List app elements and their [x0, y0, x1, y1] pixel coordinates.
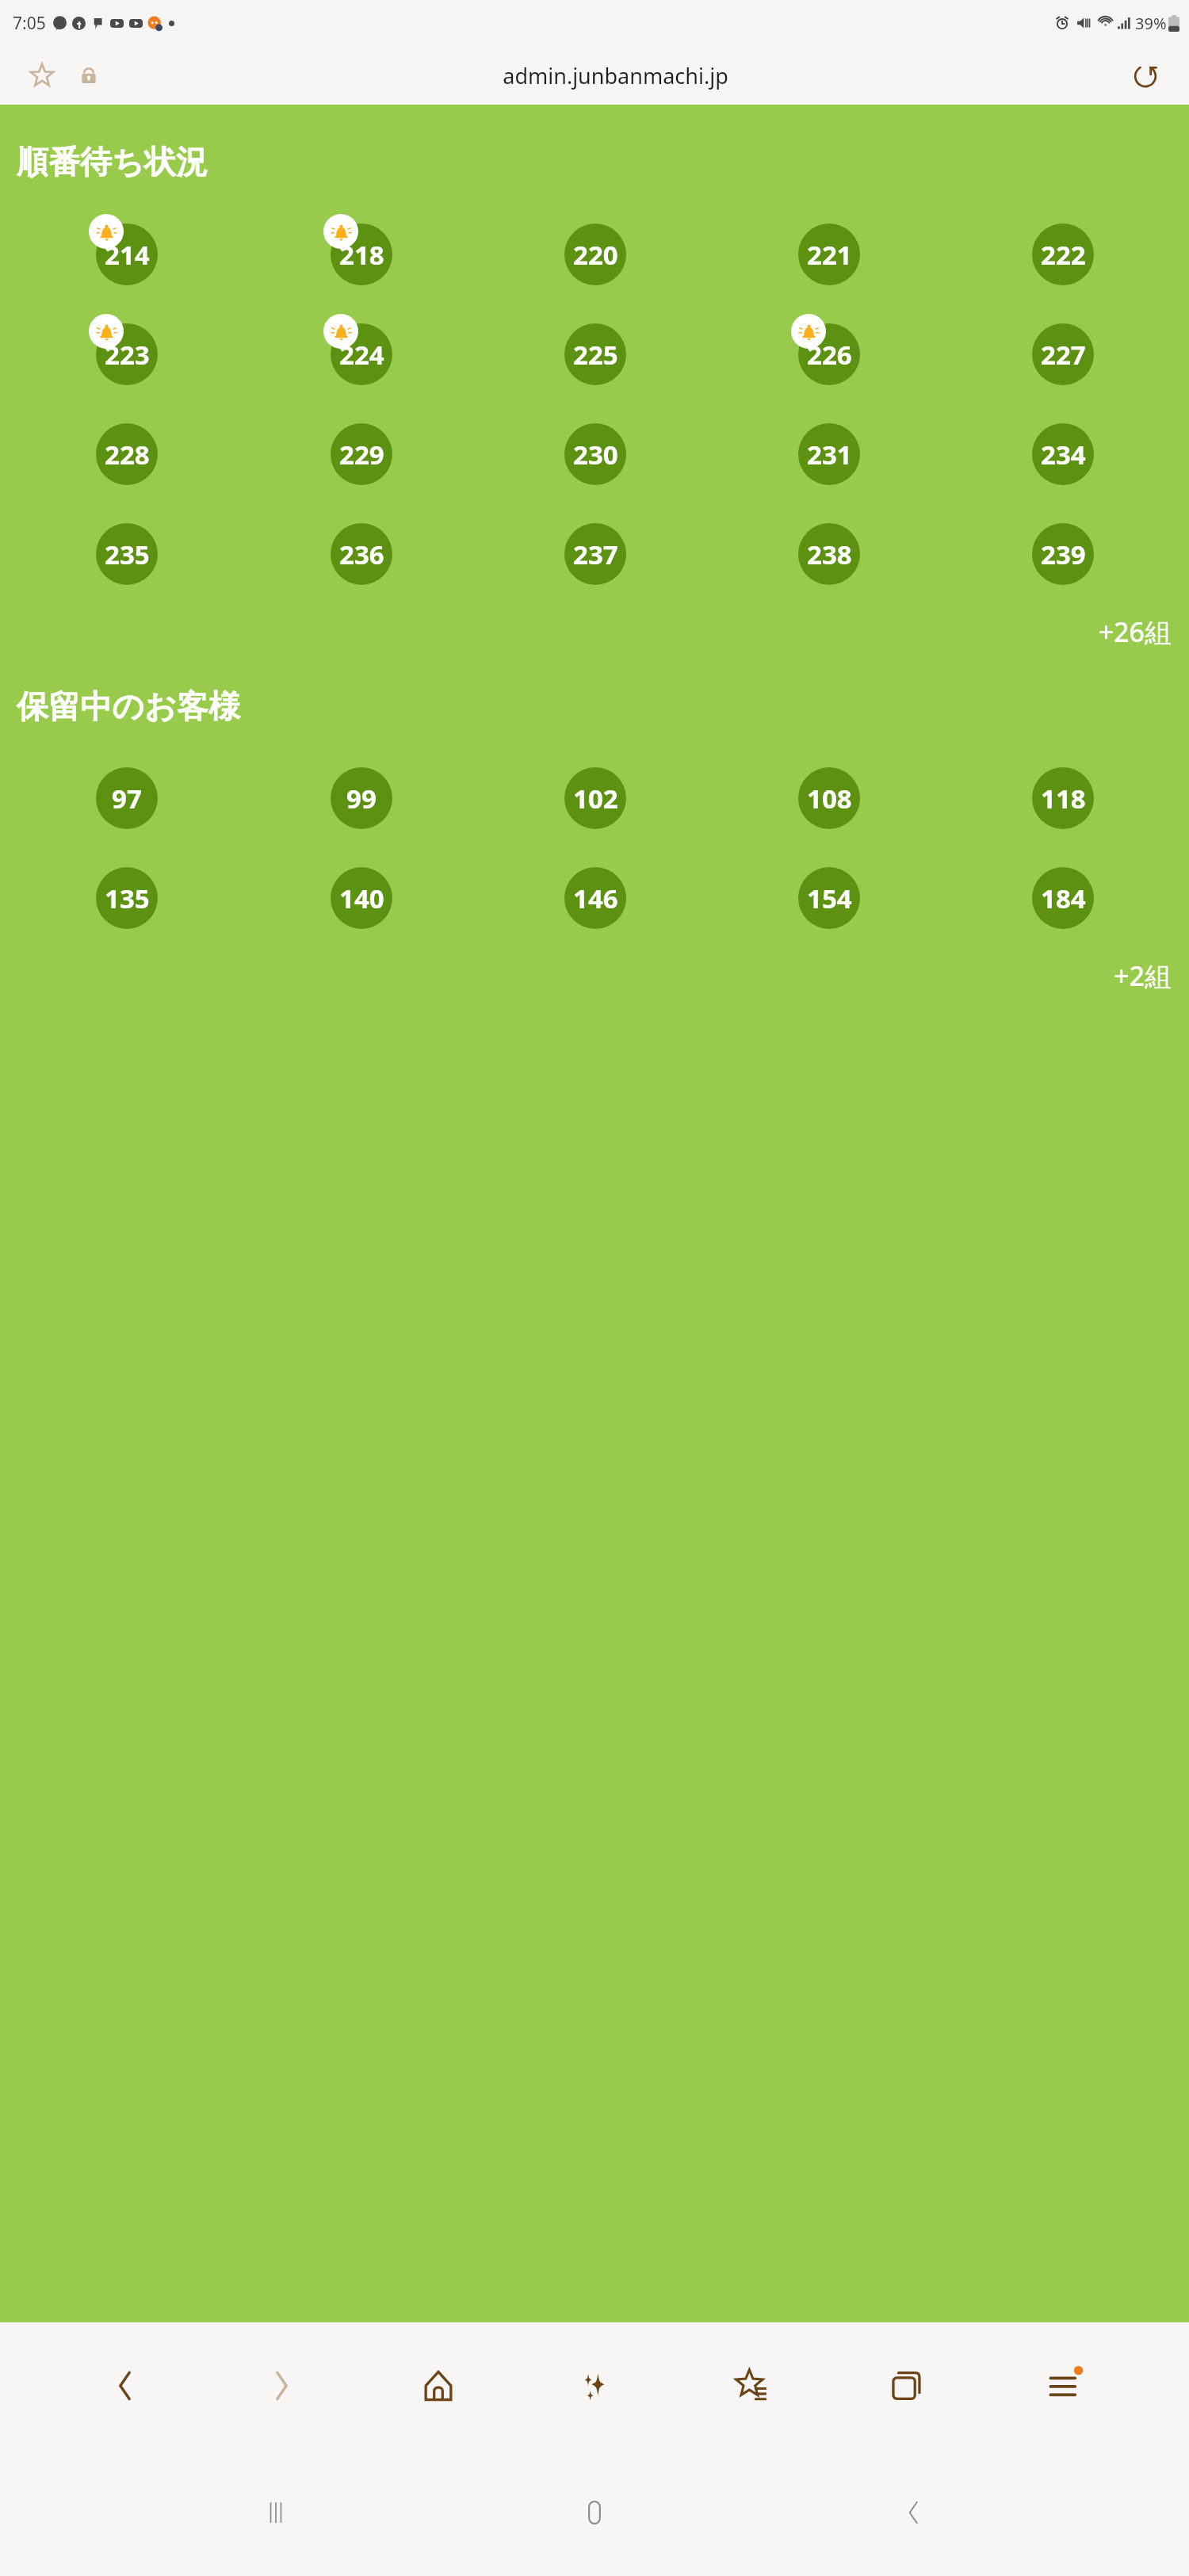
button[interactable]: 97 [88, 766, 166, 830]
button[interactable]: 102 [556, 766, 634, 830]
button[interactable]: Back [87, 2348, 163, 2424]
button[interactable]: 135 [88, 866, 166, 930]
staticText: 97 [112, 781, 142, 816]
staticText: 236 [339, 537, 384, 572]
button[interactable]: 237 [556, 522, 634, 586]
staticText: 234 [1041, 437, 1086, 472]
staticText: 230 [573, 437, 618, 472]
staticText: 218 [339, 237, 384, 273]
button[interactable]: 220 [556, 223, 634, 286]
button[interactable]: 154 [790, 866, 868, 930]
button[interactable]: Recent apps [232, 2469, 319, 2556]
button[interactable]: 229 [323, 422, 400, 486]
button[interactable]: 228 [88, 422, 166, 486]
staticText: 保留中のお客様 [17, 686, 240, 726]
button[interactable]: Secure connection [70, 56, 108, 94]
staticText: 135 [105, 881, 150, 916]
button[interactable]: 235 [88, 522, 166, 586]
button[interactable]: Bookmark [21, 54, 63, 97]
button[interactable]: 146 [556, 866, 634, 930]
button[interactable]: 223 [88, 323, 166, 386]
staticText: 99 [346, 781, 377, 816]
staticText: 順番待ち状況 [17, 142, 208, 182]
button[interactable]: 108 [790, 766, 868, 830]
button[interactable]: Assistant [556, 2348, 633, 2424]
staticText: 223 [105, 337, 150, 373]
button[interactable]: Home [400, 2348, 476, 2424]
staticText: 238 [807, 537, 852, 572]
staticText: +2組 [0, 957, 1172, 994]
staticText: 226 [807, 337, 852, 373]
staticText: admin.junbanmachi.jp [503, 61, 728, 90]
button[interactable]: 140 [323, 866, 400, 930]
button[interactable]: Bookmarks [713, 2348, 789, 2424]
button[interactable]: 239 [1024, 522, 1102, 586]
button[interactable]: 238 [790, 522, 868, 586]
staticText: 229 [339, 437, 384, 472]
staticText: 102 [573, 781, 618, 816]
staticText: 224 [339, 337, 384, 373]
button[interactable]: 118 [1024, 766, 1102, 830]
staticText: 7:05 [13, 12, 46, 35]
staticText: 146 [573, 881, 618, 916]
staticText: 221 [807, 237, 852, 273]
staticText: +26組 [0, 613, 1172, 650]
button[interactable]: Reload [1122, 52, 1168, 98]
button[interactable]: 221 [790, 223, 868, 286]
button[interactable]: admin.junbanmachi.jp [108, 46, 1122, 105]
button[interactable]: 227 [1024, 323, 1102, 386]
button[interactable]: 225 [556, 323, 634, 386]
staticText: 237 [573, 537, 618, 572]
staticText: 225 [573, 337, 618, 373]
staticText: 118 [1041, 781, 1086, 816]
staticText: 220 [573, 237, 618, 273]
button[interactable]: 224 [323, 323, 400, 386]
button[interactable]: 222 [1024, 223, 1102, 286]
staticText: 108 [807, 781, 852, 816]
staticText: 239 [1041, 537, 1086, 572]
button[interactable]: Back [870, 2469, 958, 2556]
staticText: 140 [339, 881, 384, 916]
button[interactable]: 226 [790, 323, 868, 386]
button[interactable]: 218 [323, 223, 400, 286]
staticText: 154 [807, 881, 852, 916]
staticText: 222 [1041, 237, 1086, 273]
button[interactable]: 234 [1024, 422, 1102, 486]
button[interactable]: Tabs [870, 2348, 946, 2424]
staticText: 231 [807, 437, 852, 472]
button[interactable]: 214 [88, 223, 166, 286]
staticText: 227 [1041, 337, 1086, 373]
button[interactable]: 99 [323, 766, 400, 830]
button[interactable]: Forward [243, 2348, 319, 2424]
button[interactable]: 230 [556, 422, 634, 486]
button[interactable]: 231 [790, 422, 868, 486]
button[interactable]: 236 [323, 522, 400, 586]
button[interactable]: Menu [1027, 2348, 1103, 2424]
staticText: 214 [105, 237, 150, 273]
staticText: 235 [105, 537, 150, 572]
staticText: 228 [105, 437, 150, 472]
button[interactable]: Home [551, 2469, 638, 2556]
button[interactable]: 184 [1024, 866, 1102, 930]
staticText: 39% [1135, 13, 1167, 34]
staticText: 184 [1041, 881, 1086, 916]
